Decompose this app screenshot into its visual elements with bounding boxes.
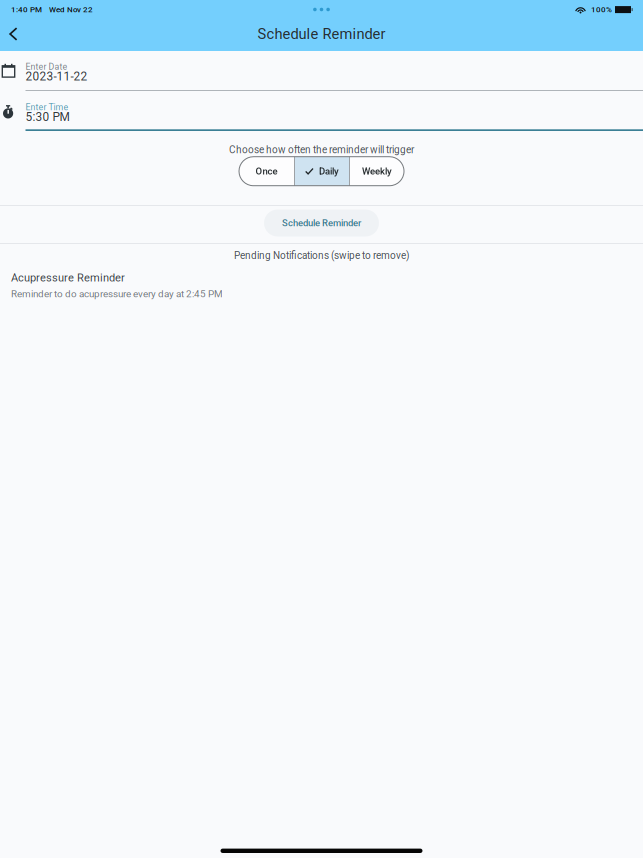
staticText: Enter Time [25,102,68,112]
button[interactable]: Enter Time [0,91,643,131]
button[interactable]: Enter Date [0,51,643,91]
staticText: 2023-11-22 [25,69,87,83]
staticText: Schedule Reminder [282,217,361,229]
button[interactable]: Weekly [350,157,404,186]
staticText: Enter Date [25,61,67,72]
staticText: Acupressure Reminder [11,271,125,284]
staticText: 100% [591,5,612,14]
button[interactable]: Once [239,157,294,186]
button[interactable]: Back [0,19,29,49]
staticText: Schedule Reminder [257,25,385,43]
staticText: Weekly [362,166,392,177]
staticText: Reminder to do acupressure every day at … [11,288,223,300]
staticText: Wed Nov 22 [49,5,93,14]
staticText: Pending Notifications (swipe to remove) [234,250,409,261]
staticText: Choose how often the reminder will trigg… [229,144,414,156]
button[interactable]: Daily [295,157,349,186]
staticText: 1:40 PM [11,5,42,14]
button[interactable]: Acupressure Reminder [0,264,643,302]
button[interactable]: Schedule Reminder [264,209,379,236]
staticText: Daily [319,166,339,177]
staticText: Once [255,166,277,177]
staticText: 5:30 PM [25,110,69,124]
